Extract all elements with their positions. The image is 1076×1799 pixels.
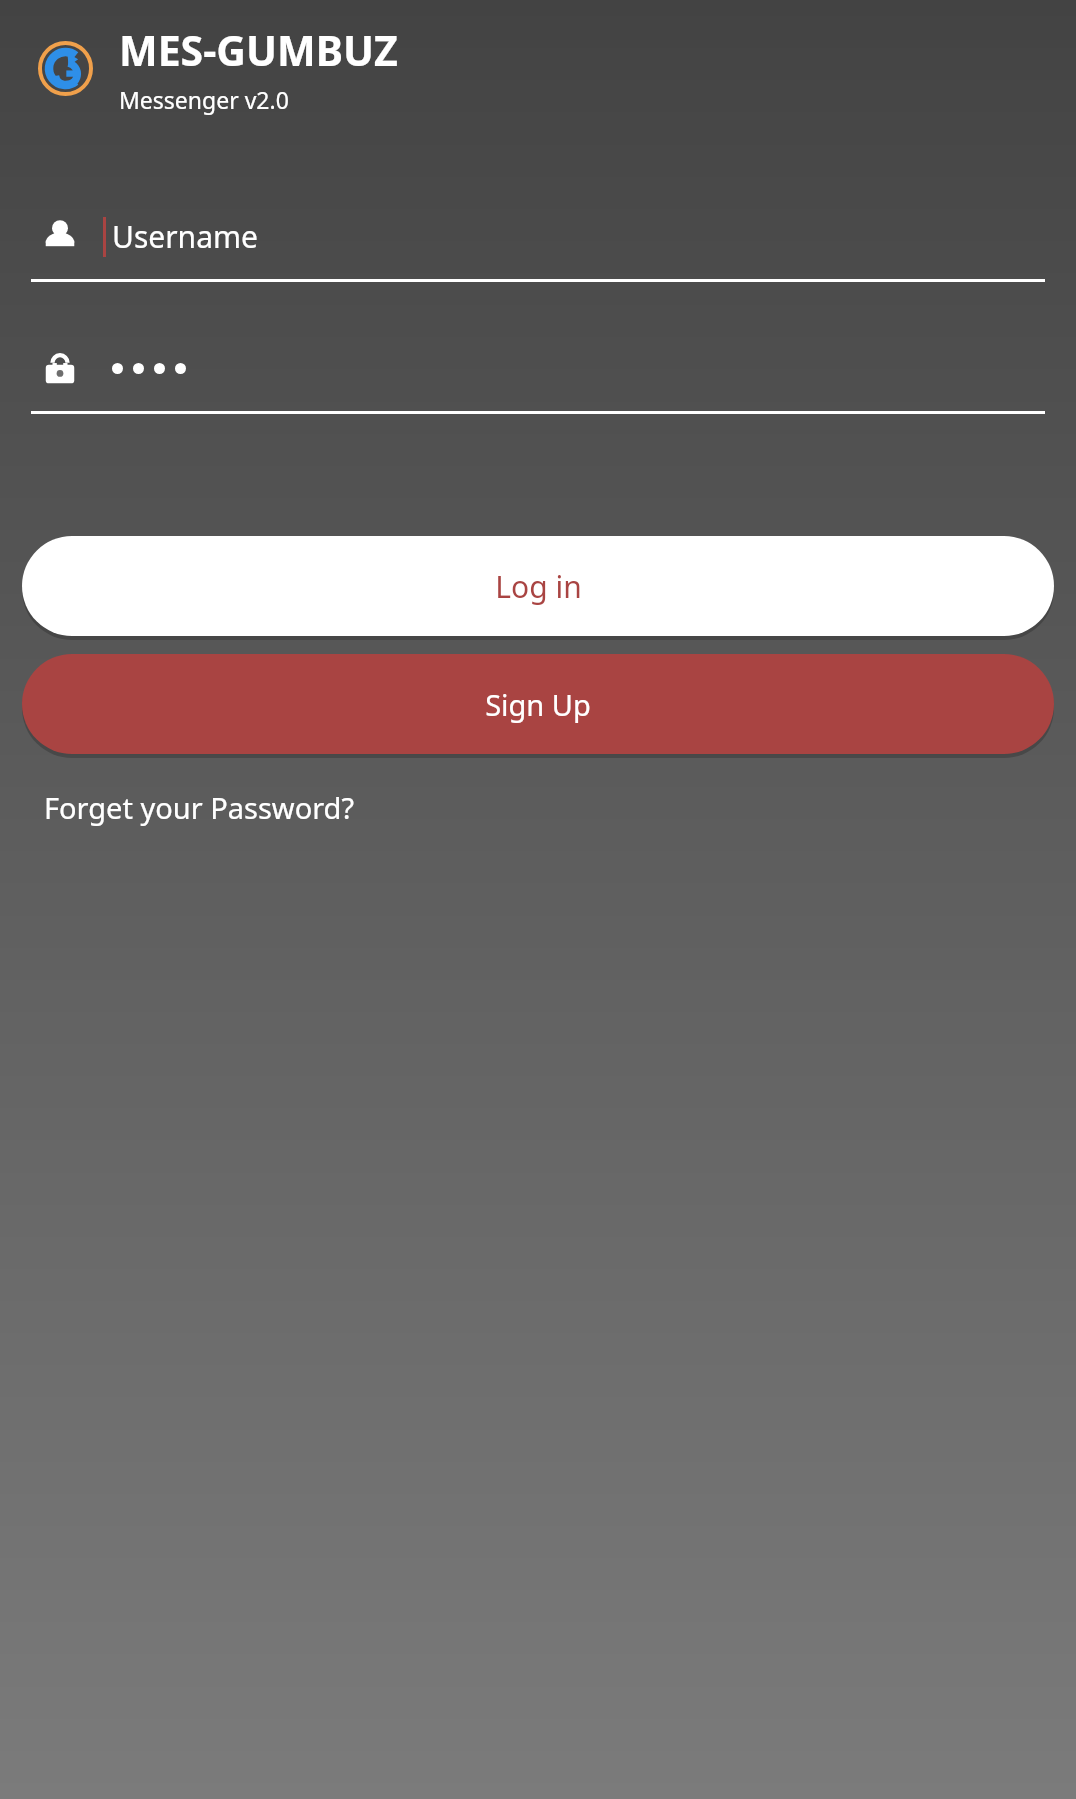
other: Password <box>44 352 76 384</box>
other: User <box>43 219 77 253</box>
button[interactable]: Password field <box>31 339 1045 414</box>
staticText: Sign Up <box>485 685 591 724</box>
staticText: Username <box>112 216 258 257</box>
staticText: Messenger v2.0 <box>119 84 289 115</box>
staticText: Forget your Password? <box>44 788 355 827</box>
button[interactable]: Forget your Password? <box>42 780 357 835</box>
other: App logo <box>38 41 93 96</box>
staticText: Log in <box>495 566 582 607</box>
button[interactable]: Log in <box>22 536 1054 636</box>
button[interactable]: Username field <box>31 207 1045 282</box>
button[interactable]: Sign Up <box>22 654 1054 754</box>
staticText: MES-GUMBUZ <box>119 22 398 78</box>
